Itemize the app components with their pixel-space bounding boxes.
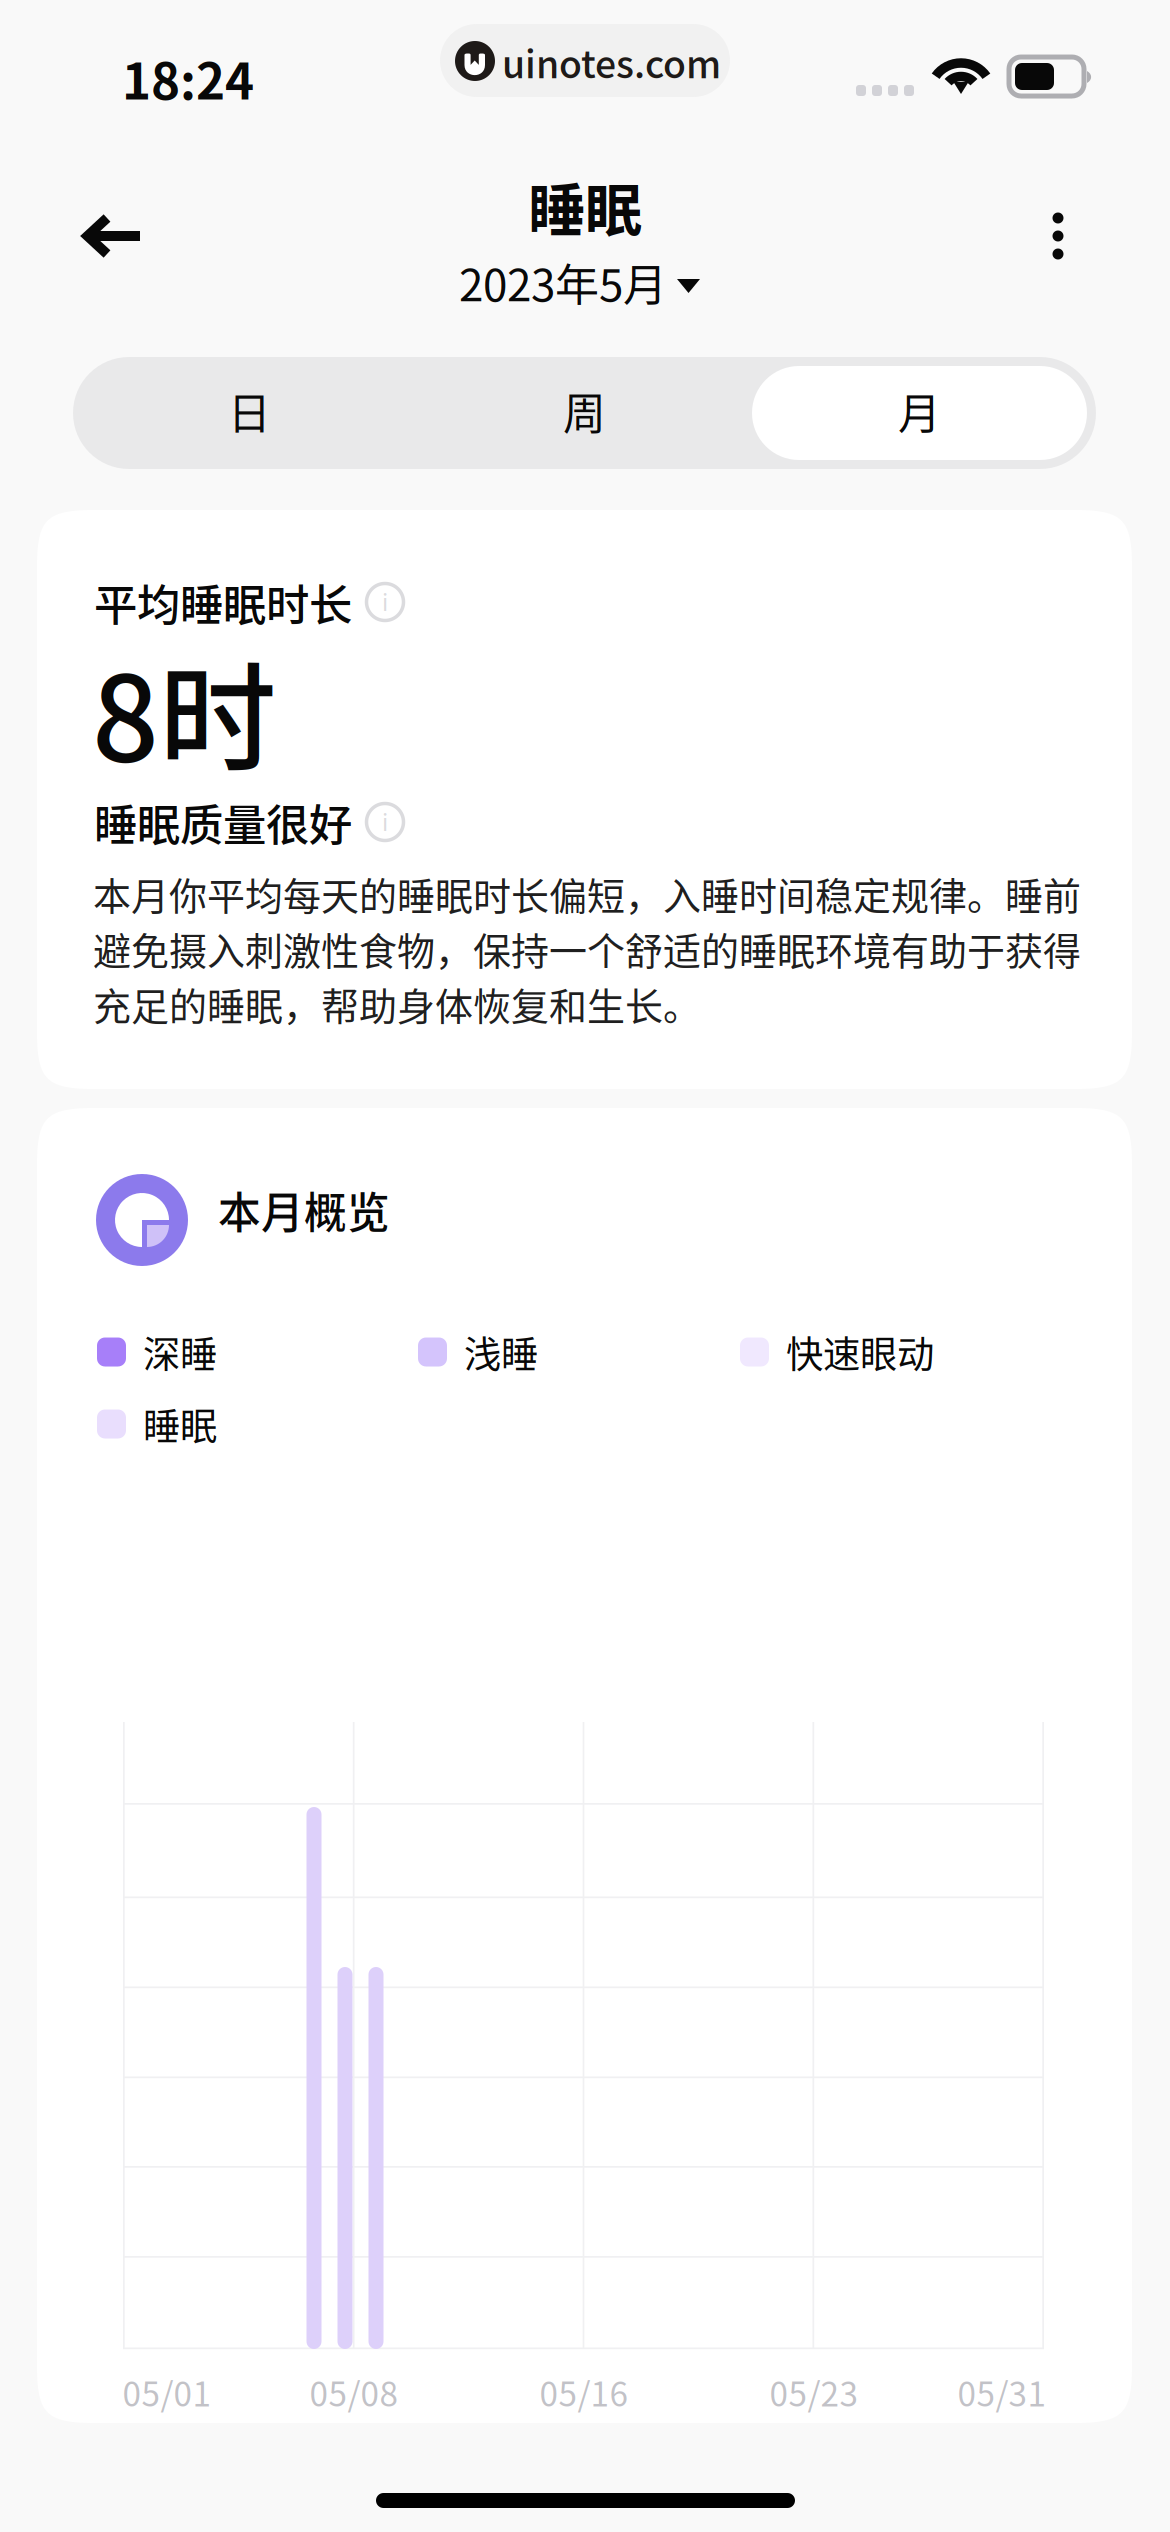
button[interactable]: 月: [752, 366, 1087, 460]
staticText: 睡眠: [528, 164, 642, 247]
staticText: i: [382, 585, 388, 617]
button[interactable]: 更多: [1012, 186, 1104, 286]
staticText: 05/08: [309, 2368, 398, 2416]
staticText: 睡眠: [143, 1397, 217, 1451]
staticText: 8时: [92, 625, 276, 795]
staticText: 2023年5月: [459, 250, 667, 314]
staticText: 平均睡眠时长: [94, 571, 352, 633]
staticText: 月: [898, 380, 941, 442]
staticText: uinotes.com: [502, 35, 721, 89]
staticText: 周: [563, 380, 606, 442]
button[interactable]: 日: [82, 366, 417, 460]
staticText: 05/01: [122, 2368, 211, 2416]
staticText: 本月概览: [218, 1179, 390, 1241]
button[interactable]: 周: [417, 366, 752, 460]
staticText: 05/23: [769, 2368, 858, 2416]
staticText: 深睡: [143, 1325, 217, 1379]
staticText: 快速眼动: [786, 1325, 934, 1379]
staticText: i: [382, 805, 388, 837]
staticText: 日: [228, 380, 271, 442]
staticText: 浅睡: [464, 1325, 538, 1379]
staticText: 18:24: [122, 42, 254, 114]
staticText: 本月你平均每天的睡眠时长偏短，入睡时间稳定规律。睡前避免摄入刺激性食物，保持一个…: [93, 866, 1081, 1031]
staticText: 睡眠质量很好: [94, 791, 352, 853]
button[interactable]: 返回: [60, 186, 164, 286]
staticText: 05/16: [539, 2368, 628, 2416]
button[interactable]: 2023年5月: [459, 250, 700, 314]
staticText: 05/31: [957, 2368, 1046, 2416]
